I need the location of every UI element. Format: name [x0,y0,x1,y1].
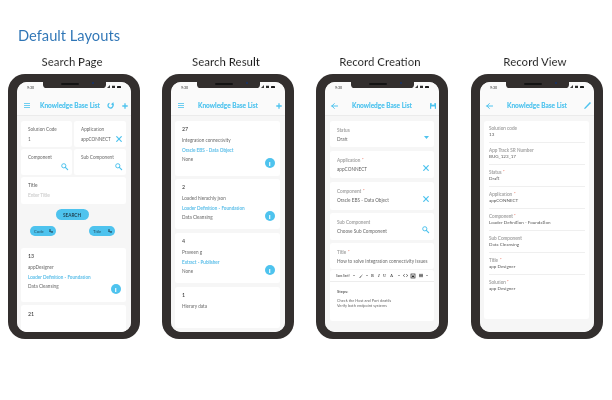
button[interactable]: App Track SR Number [484,143,589,164]
staticText: 9:30 [335,85,343,89]
button[interactable]: Title [330,243,434,269]
staticText: Draft [337,136,348,142]
button[interactable]: Menu [175,100,186,111]
button[interactable]: Component [21,149,72,175]
button[interactable]: Save [427,100,438,111]
staticText: Sans Serif [336,274,350,278]
button[interactable]: Sub Component [484,231,589,252]
staticText: SEARCH [63,212,82,218]
staticText: Sub Component [337,219,371,225]
staticText: i [115,286,117,293]
staticText: Integration connectivity [182,137,231,143]
button[interactable]: 13 [21,248,126,302]
staticText: 1 [28,136,31,142]
staticText: Knowledge Base List [40,102,100,110]
button[interactable]: Solution [484,275,589,296]
button[interactable]: Title [21,177,126,204]
button[interactable]: Info [265,158,275,168]
staticText: Sub Component [81,154,114,160]
button[interactable]: 4 [175,233,280,283]
staticText: Knowledge Base List [352,102,412,110]
staticText: None [182,268,194,274]
staticText: 1 [182,292,186,298]
staticText: Loaded hierachly json [182,195,226,201]
staticText: Check the Host and Port deatils [337,298,392,303]
staticText: Extract - Publisher [182,259,220,265]
button[interactable]: Status [484,165,589,186]
staticText: i [269,213,271,220]
button[interactable]: Status [330,121,434,147]
staticText: 21 [28,311,35,317]
staticText: Title [93,229,102,234]
staticText: * [513,213,516,218]
button[interactable]: Code [30,226,56,236]
button[interactable]: Application [484,187,589,208]
staticText: Loader Definition - Foundation [28,274,91,280]
button[interactable]: 27 [175,121,280,176]
button[interactable]: Sub Component [330,213,434,240]
staticText: None [182,156,194,162]
button[interactable]: Component [484,209,589,230]
button[interactable]: Info [111,284,121,294]
staticText: Praveen g [182,249,203,255]
staticText: Status [489,169,502,175]
staticText: A [390,273,394,279]
staticText: Application [337,157,361,163]
staticText: 27 [182,126,189,132]
staticText: 9:30 [181,85,189,89]
button[interactable]: SEARCH [56,209,89,220]
button[interactable]: Application [330,151,434,178]
staticText: Code [34,229,44,234]
staticText: Choose Sub Component [337,228,387,234]
staticText: Data Cleansing [489,242,520,247]
staticText: Component [489,213,513,219]
staticText: Draft [489,176,500,181]
staticText: Sub Component [489,235,522,241]
button[interactable]: Title [89,226,115,236]
button[interactable]: Title [484,253,589,274]
button[interactable]: Application [74,121,126,147]
staticText: i [269,267,271,274]
staticText: U [383,273,387,279]
button[interactable]: Info [265,265,275,275]
staticText: 9:30 [27,85,35,89]
button[interactable]: Back [484,100,495,111]
staticText: Knowledge Base List [198,102,258,110]
button[interactable]: Add [273,100,284,111]
button[interactable]: Component [330,182,434,210]
staticText: appCONNECT [81,136,111,142]
staticText: I [378,273,380,279]
staticText: Record Creation [299,55,461,69]
staticText: Solution Code [28,126,57,132]
staticText: i [269,160,271,167]
staticText: * [502,169,505,174]
button[interactable]: Solution Code [21,121,72,147]
staticText: Verify both endpoint systems [337,303,387,308]
staticText: appCONNECT [489,198,519,203]
button[interactable]: Refresh [105,100,116,111]
button[interactable]: 1 [175,287,280,328]
staticText: B [371,273,374,279]
staticText: * [506,279,509,284]
staticText: Hierary data [182,303,208,309]
staticText: App Track SR Number [489,147,534,153]
staticText: Title [489,257,499,263]
button[interactable]: Back [329,100,340,111]
staticText: Oracle EBS - Data Object [337,197,390,203]
staticText: 13 [28,253,35,259]
button[interactable]: Info [265,211,275,221]
staticText: How to solve integration connectivity is… [337,258,428,264]
staticText: Loader Definition - Foundation [182,205,245,211]
staticText: Application [81,126,105,132]
button[interactable]: Edit [582,100,593,111]
staticText: * [347,249,350,254]
button[interactable]: Sub Component [74,149,126,175]
button[interactable]: 2 [175,179,280,229]
staticText: 13 [489,132,495,137]
staticText: * [499,257,502,262]
button[interactable]: 21 [21,305,126,332]
staticText: Record View [454,55,612,69]
button[interactable]: Menu [21,100,32,111]
button[interactable]: Solution code [484,121,589,142]
button[interactable]: Add [119,100,130,111]
